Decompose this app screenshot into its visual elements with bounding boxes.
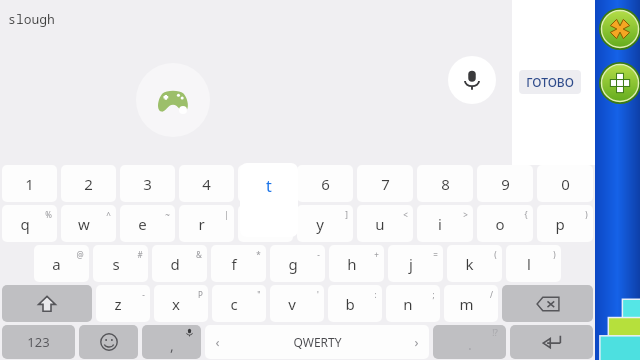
button[interactable]: 6 [297, 165, 353, 202]
button[interactable]: 9 [477, 165, 533, 202]
staticText: l [527, 254, 531, 274]
button[interactable]: Backspace [502, 285, 593, 322]
staticText: s [112, 254, 120, 274]
staticText: ^ [106, 209, 111, 220]
button[interactable]: i [417, 205, 473, 242]
button[interactable]: p [537, 205, 593, 242]
button[interactable]: Period [433, 325, 506, 359]
staticText: 1 [25, 174, 34, 194]
staticText: ) [553, 249, 556, 260]
staticText: d [170, 254, 180, 274]
staticText: g [288, 254, 298, 274]
button[interactable]: n [386, 285, 440, 322]
button[interactable]: 4 [179, 165, 234, 202]
staticText: f [231, 254, 237, 274]
button[interactable]: Enter [510, 325, 593, 359]
button[interactable]: e [120, 205, 175, 242]
button[interactable]: b [328, 285, 382, 322]
staticText: h [347, 254, 357, 274]
button[interactable]: 7 [357, 165, 413, 202]
button[interactable]: Shift [2, 285, 92, 322]
staticText: m [459, 294, 474, 314]
button[interactable]: Game controller [136, 63, 210, 137]
staticText: b [345, 294, 355, 314]
button[interactable]: 5 [238, 165, 293, 202]
button[interactable]: ГОТОВО [519, 70, 581, 94]
button[interactable]: r [179, 205, 234, 242]
staticText: ] [345, 209, 348, 220]
staticText: > [463, 209, 468, 220]
staticText: | [224, 209, 229, 220]
staticText: ) [585, 209, 588, 220]
button[interactable]: Emoji [79, 325, 138, 359]
button[interactable]: y [297, 205, 353, 242]
staticText: 123 [27, 333, 50, 351]
staticText: 6 [321, 174, 330, 194]
staticText: w [78, 214, 90, 234]
button[interactable]: a [34, 245, 89, 282]
staticText: p [555, 214, 565, 234]
staticText: & [196, 249, 202, 260]
staticText: i [438, 214, 442, 234]
button[interactable]: 123 [2, 325, 75, 359]
staticText: 0 [561, 174, 570, 194]
staticText: › [414, 333, 419, 351]
staticText: * [256, 249, 261, 260]
staticText: = [433, 249, 438, 260]
staticText: { [524, 209, 528, 220]
button[interactable]: QWERTY [205, 325, 429, 359]
button[interactable]: 0 [537, 165, 593, 202]
staticText: u [375, 214, 385, 234]
button[interactable]: w [61, 205, 116, 242]
staticText: k [465, 254, 474, 274]
button[interactable]: l [506, 245, 561, 282]
button[interactable]: Voice input [448, 56, 496, 104]
staticText: j [409, 254, 413, 274]
button[interactable]: z [96, 285, 150, 322]
staticText: 2 [84, 174, 93, 194]
staticText: - [142, 289, 145, 300]
staticText: 8 [441, 174, 450, 194]
button[interactable]: Close [599, 8, 640, 50]
button[interactable]: j [388, 245, 443, 282]
button[interactable]: 8 [417, 165, 473, 202]
button[interactable]: h [329, 245, 384, 282]
staticText: ГОТОВО [526, 74, 574, 90]
staticText: y [316, 214, 324, 234]
staticText: 7 [381, 174, 390, 194]
staticText: ~ [165, 209, 170, 220]
button[interactable]: m [444, 285, 498, 322]
button[interactable]: 1 [2, 165, 57, 202]
button[interactable]: c [212, 285, 266, 322]
button[interactable]: d [152, 245, 207, 282]
button[interactable]: q [2, 205, 57, 242]
button[interactable]: k [447, 245, 502, 282]
button[interactable]: g [270, 245, 325, 282]
button[interactable]: 3 [120, 165, 175, 202]
button[interactable]: u [357, 205, 413, 242]
staticText: @ [76, 249, 84, 260]
staticText: QWERTY [293, 334, 342, 350]
staticText: 3 [143, 174, 152, 194]
staticText: " [257, 289, 261, 300]
button[interactable]: s [93, 245, 148, 282]
button[interactable]: o [477, 205, 533, 242]
staticText: . [468, 335, 472, 354]
staticText: x [172, 294, 180, 314]
staticText: - [317, 249, 320, 260]
button[interactable]: v [270, 285, 324, 322]
button[interactable]: 2 [61, 165, 116, 202]
button[interactable]: Comma [142, 325, 201, 359]
staticText: < [403, 209, 408, 220]
staticText: , [170, 336, 174, 355]
button[interactable]: f [211, 245, 266, 282]
button[interactable]: x [154, 285, 208, 322]
staticText: P [198, 289, 203, 300]
staticText: ( [494, 249, 497, 260]
staticText: slough [8, 10, 55, 28]
staticText: z [114, 294, 122, 314]
button[interactable]: Add [599, 62, 640, 104]
staticText: ' [317, 289, 319, 300]
